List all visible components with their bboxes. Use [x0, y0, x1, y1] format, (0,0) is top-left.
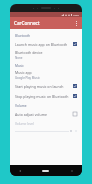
- staticText: Auto adjust volume: [15, 112, 47, 117]
- button[interactable]: Back: [17, 168, 23, 174]
- button[interactable]: Stop playing music on Bluetooth disconne…: [10, 91, 82, 101]
- staticText: Stop playing music on Bluetooth disconne…: [15, 94, 71, 99]
- staticText: Google Play Music: [15, 76, 40, 80]
- staticText: CarConnect: [14, 20, 40, 26]
- button[interactable]: Start playing music on launch: [10, 81, 82, 91]
- button[interactable]: Home: [42, 170, 49, 172]
- staticText: Music: [15, 64, 24, 68]
- button[interactable]: Volume level: [10, 119, 82, 134]
- staticText: Volume: [15, 104, 27, 108]
- staticText: None: [15, 56, 23, 60]
- button[interactable]: Music app: [10, 69, 82, 81]
- button[interactable]: Launch music app on Bluetooth connection: [10, 39, 82, 49]
- button[interactable]: Auto adjust volume: [10, 109, 82, 119]
- staticText: Bluetooth device: [15, 50, 43, 55]
- staticText: 100%: [73, 13, 80, 16]
- staticText: Music app: [15, 70, 32, 75]
- staticText: Bluetooth: [15, 34, 31, 38]
- button[interactable]: Bluetooth device: [10, 49, 82, 61]
- button[interactable]: Recent apps: [69, 168, 75, 174]
- button[interactable]: More options: [72, 19, 80, 27]
- staticText: Launch music app on Bluetooth connection: [15, 42, 71, 47]
- staticText: Volume level: [15, 122, 34, 126]
- staticText: Start playing music on launch: [15, 84, 64, 89]
